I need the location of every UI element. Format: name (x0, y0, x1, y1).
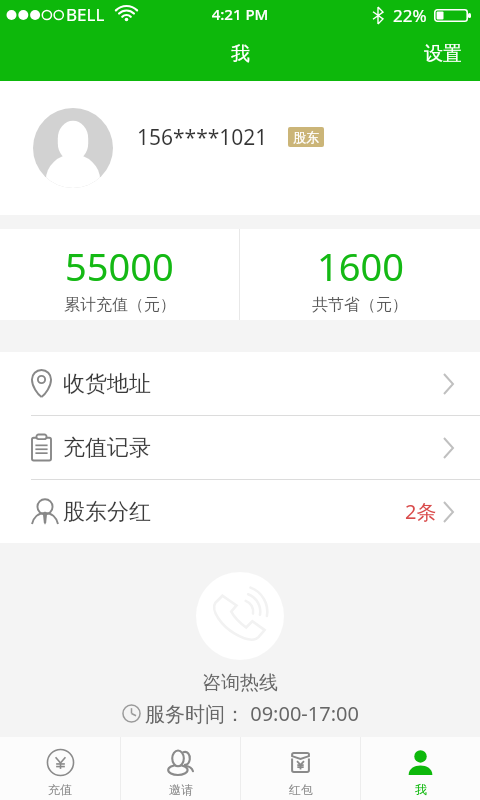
button[interactable]: 我 (361, 737, 480, 800)
button[interactable]: 收货地址 (0, 352, 480, 415)
staticText: 股东 (293, 129, 319, 145)
staticText: 咨询热线 (202, 671, 278, 695)
staticText: 充值记录 (63, 434, 151, 462)
staticText: 设置 (424, 42, 462, 66)
staticText: 股东分红 (63, 498, 151, 526)
button[interactable]: 红包 (241, 737, 360, 800)
staticText: 156****1021 (137, 123, 268, 152)
staticText: 1600 (317, 240, 404, 292)
staticText: 共节省（元） (312, 295, 408, 315)
button[interactable]: 55000 (0, 229, 239, 315)
staticText: 收货地址 (63, 370, 151, 398)
staticText: 我 (415, 782, 427, 797)
button[interactable]: 充值 (0, 737, 120, 800)
button[interactable]: 1600 (240, 229, 480, 315)
staticText: 55000 (65, 240, 174, 292)
staticText: 邀请 (169, 782, 193, 797)
staticText: 22% (393, 4, 427, 27)
staticText: 4:21 PM (0, 4, 480, 24)
button[interactable]: 设置 (406, 32, 480, 76)
staticText: 服务时间： 09:00-17:00 (145, 700, 359, 727)
button[interactable]: 156****1021 (0, 81, 480, 215)
button[interactable]: Call hotline (196, 572, 284, 660)
staticText: 我 (231, 42, 250, 66)
button[interactable]: 股东分红 (0, 480, 480, 543)
staticText: 2条 (405, 498, 437, 525)
button[interactable]: 邀请 (121, 737, 240, 800)
staticText: 红包 (289, 782, 313, 797)
staticText: 充值 (48, 782, 72, 797)
button[interactable]: 充值记录 (0, 416, 480, 479)
staticText: 累计充值（元） (64, 295, 176, 315)
staticText: BELL (66, 3, 105, 26)
